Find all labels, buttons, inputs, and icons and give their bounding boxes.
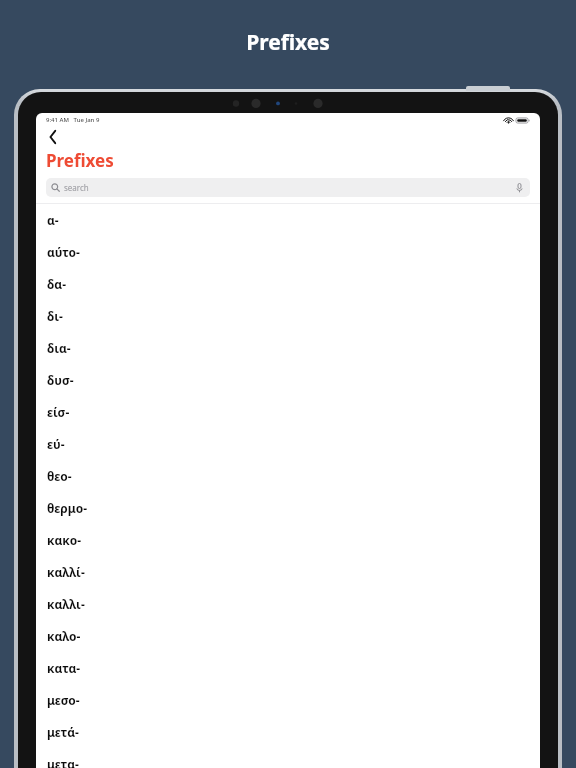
staticText: search	[64, 182, 89, 193]
button[interactable]: δι-	[36, 300, 540, 332]
button[interactable]: κατα-	[36, 652, 540, 684]
staticText: καλο-	[47, 628, 81, 644]
button[interactable]: Back	[40, 127, 66, 147]
staticText: εύ-	[47, 436, 65, 452]
button[interactable]: δυσ-	[36, 364, 540, 396]
button[interactable]: search	[46, 178, 530, 197]
staticText: είσ-	[47, 404, 70, 420]
staticText: μετά-	[47, 724, 79, 740]
staticText: δα-	[47, 276, 67, 292]
staticText: Prefixes	[0, 28, 576, 57]
button[interactable]: κακο-	[36, 524, 540, 556]
staticText: καλλι-	[47, 596, 85, 612]
button[interactable]: καλο-	[36, 620, 540, 652]
staticText: θερμο-	[47, 500, 87, 516]
staticText: καλλί-	[47, 564, 85, 580]
staticText: κακο-	[47, 532, 82, 548]
staticText: δι-	[47, 308, 63, 324]
button[interactable]: α-	[36, 204, 540, 236]
button[interactable]: θεο-	[36, 460, 540, 492]
staticText: Prefixes	[46, 149, 114, 172]
staticText: κατα-	[47, 660, 81, 676]
button[interactable]: μετά-	[36, 716, 540, 748]
staticText: θεο-	[47, 468, 72, 484]
staticText: μεσο-	[47, 692, 80, 708]
button[interactable]: είσ-	[36, 396, 540, 428]
staticText: αύτο-	[47, 244, 80, 260]
button[interactable]: δια-	[36, 332, 540, 364]
button[interactable]: εύ-	[36, 428, 540, 460]
staticText: δια-	[47, 340, 71, 356]
button[interactable]: καλλι-	[36, 588, 540, 620]
button[interactable]: θερμο-	[36, 492, 540, 524]
staticText: 9:41 AM Tue Jan 9	[46, 116, 100, 124]
staticText: μετα-	[47, 756, 79, 768]
button[interactable]: μεσο-	[36, 684, 540, 716]
staticText: δυσ-	[47, 372, 74, 388]
button[interactable]: αύτο-	[36, 236, 540, 268]
button[interactable]: καλλί-	[36, 556, 540, 588]
staticText: α-	[47, 212, 59, 228]
button[interactable]: μετα-	[36, 748, 540, 768]
button[interactable]: δα-	[36, 268, 540, 300]
button[interactable]: Voice search	[514, 182, 525, 193]
